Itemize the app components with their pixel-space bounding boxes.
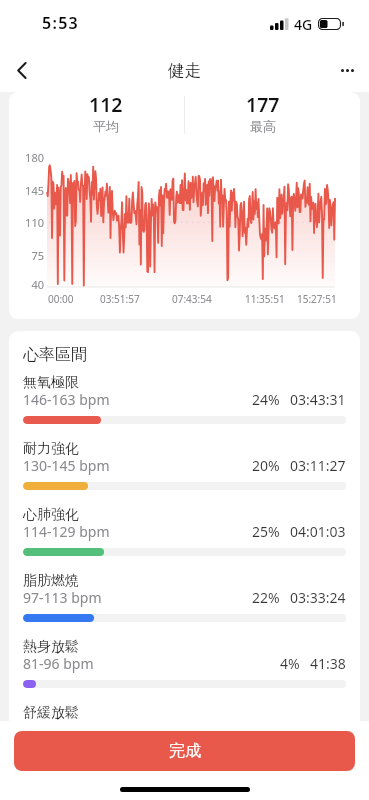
button[interactable]: 完成 bbox=[14, 731, 355, 771]
staticText: 平均 bbox=[93, 118, 119, 134]
staticText: 熱身放鬆 bbox=[23, 638, 79, 656]
staticText: 心率區間 bbox=[23, 345, 87, 365]
staticText: 177 bbox=[246, 92, 280, 118]
staticText: 81-96 bpm bbox=[23, 654, 94, 673]
staticText: 4% bbox=[280, 654, 300, 673]
staticText: 20% bbox=[252, 456, 280, 475]
staticText: 110 bbox=[9, 215, 44, 230]
staticText: 00:00 bbox=[48, 292, 74, 306]
staticText: 22% bbox=[252, 588, 280, 607]
staticText: 11:35:51 bbox=[245, 292, 285, 306]
staticText: 25% bbox=[252, 522, 280, 541]
staticText: 41:38 bbox=[310, 654, 346, 673]
staticText: 03:51:57 bbox=[100, 292, 140, 306]
staticText: 舒緩放鬆 bbox=[23, 704, 79, 722]
staticText: 完成 bbox=[169, 741, 201, 761]
staticText: 97-113 bpm bbox=[23, 588, 102, 607]
staticText: 145 bbox=[9, 183, 44, 198]
button[interactable]: Back bbox=[0, 48, 44, 92]
staticText: 04:01:03 bbox=[290, 522, 346, 541]
staticText: 40 bbox=[9, 277, 44, 292]
staticText: 健走 bbox=[168, 60, 201, 81]
staticText: 112 bbox=[89, 92, 123, 118]
staticText: 無氧極限 bbox=[23, 374, 79, 392]
staticText: 07:43:54 bbox=[172, 292, 212, 306]
staticText: 75 bbox=[9, 248, 44, 263]
staticText: 最高 bbox=[250, 118, 276, 134]
button[interactable]: More options bbox=[325, 48, 369, 92]
staticText: 130-145 bpm bbox=[23, 456, 110, 475]
staticText: 耐力強化 bbox=[23, 440, 79, 458]
staticText: 4G bbox=[294, 15, 313, 34]
staticText: 03:43:31 bbox=[290, 390, 346, 409]
staticText: 脂肪燃燒 bbox=[23, 572, 79, 590]
staticText: 114-129 bpm bbox=[23, 522, 110, 541]
staticText: 03:33:24 bbox=[290, 588, 346, 607]
staticText: 180 bbox=[9, 150, 44, 165]
staticText: 03:11:27 bbox=[290, 456, 346, 475]
staticText: 24% bbox=[252, 390, 280, 409]
staticText: 15:27:51 bbox=[297, 292, 337, 306]
staticText: 5:53 bbox=[42, 12, 80, 34]
staticText: 心肺強化 bbox=[23, 506, 79, 524]
staticText: 146-163 bpm bbox=[23, 390, 110, 409]
